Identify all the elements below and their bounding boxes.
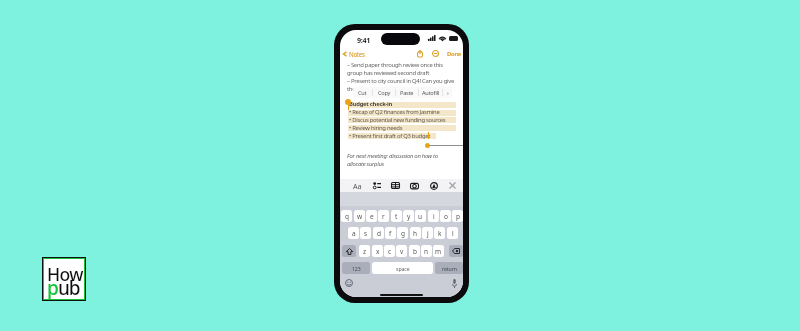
button[interactable]: Delete [449, 245, 463, 257]
button[interactable]: o [440, 210, 451, 222]
staticText: How [47, 262, 83, 286]
staticText: w [357, 212, 363, 221]
button[interactable]: p [452, 210, 463, 222]
button[interactable]: Notes [341, 48, 367, 60]
button[interactable]: Cut [353, 87, 372, 98]
button[interactable]: Format [351, 179, 364, 192]
staticText: space [396, 265, 410, 272]
staticText: v [400, 247, 404, 256]
button[interactable]: j [422, 227, 433, 239]
button[interactable]: Markup [427, 179, 440, 192]
staticText: n [424, 247, 429, 256]
button[interactable]: w [354, 210, 365, 222]
button[interactable]: l [447, 227, 458, 239]
button[interactable]: f [385, 227, 396, 239]
staticText: allocate surplus [347, 160, 384, 168]
button[interactable]: i [428, 210, 439, 222]
button[interactable]: t [391, 210, 402, 222]
button[interactable]: q [341, 210, 352, 222]
staticText: j [427, 229, 429, 238]
staticText: Done [447, 50, 462, 58]
button[interactable]: v [396, 245, 407, 257]
button[interactable]: x [372, 245, 383, 257]
staticText: ub [58, 275, 80, 301]
button[interactable]: d [373, 227, 384, 239]
button[interactable]: 123 [342, 262, 370, 274]
staticText: d [377, 229, 381, 238]
staticText: • Review hiring needs [349, 124, 403, 132]
staticText: x [376, 247, 380, 256]
staticText: b [413, 247, 417, 256]
staticText: k [438, 229, 442, 238]
staticText: Copy [378, 89, 391, 97]
button[interactable]: m [433, 245, 444, 257]
button[interactable]: n [421, 245, 432, 257]
staticText: Aa [353, 181, 362, 191]
staticText: l [452, 229, 454, 238]
staticText: Cut [358, 89, 367, 97]
button[interactable]: Done [445, 48, 463, 60]
staticText: 9:41 [357, 35, 371, 45]
button[interactable]: Dictate [449, 278, 459, 288]
staticText: the [347, 85, 356, 93]
staticText: p [47, 275, 58, 301]
staticText: m [435, 247, 442, 256]
staticText: a [352, 229, 356, 238]
button[interactable]: r [378, 210, 389, 222]
staticText: i [433, 212, 435, 221]
staticText: u [418, 212, 423, 221]
button[interactable]: return [435, 262, 463, 274]
staticText: Autofill [422, 89, 439, 97]
staticText: For next meeting: discussion on how to [347, 152, 438, 160]
button[interactable]: g [397, 227, 408, 239]
staticText: return [442, 265, 457, 272]
button[interactable]: h [410, 227, 421, 239]
button[interactable]: y [403, 210, 414, 222]
staticText: f [389, 229, 392, 238]
button[interactable]: Table [389, 179, 402, 192]
staticText: c [388, 247, 392, 256]
button[interactable]: Checklist [370, 179, 383, 192]
button[interactable]: Emoji [344, 278, 354, 288]
staticText: g [401, 229, 405, 238]
button[interactable]: Camera [408, 179, 421, 192]
staticText: t [395, 212, 398, 221]
staticText: s [364, 229, 368, 238]
staticText: p [456, 212, 460, 221]
staticText: z [363, 247, 367, 256]
button[interactable]: space [372, 262, 433, 274]
staticText: y [407, 212, 411, 221]
button[interactable]: Close [446, 179, 459, 192]
button[interactable]: Paste [396, 87, 418, 98]
button[interactable]: s [360, 227, 371, 239]
button[interactable]: › [443, 87, 452, 98]
button[interactable]: e [366, 210, 377, 222]
staticText: 123 [352, 265, 361, 272]
button[interactable]: z [359, 245, 370, 257]
staticText: r [382, 212, 385, 221]
button[interactable]: c [384, 245, 395, 257]
button[interactable]: k [434, 227, 445, 239]
button[interactable]: b [409, 245, 420, 257]
staticText: • Present first draft of Q3 budget [349, 132, 431, 140]
staticText: q [345, 212, 349, 221]
staticText: • Recap of Q2 finances from Jasmine [349, 108, 440, 116]
button[interactable]: Shift [342, 245, 356, 257]
staticText: group has reviewed second draft [347, 69, 429, 77]
staticText: o [444, 212, 448, 221]
staticText: Notes [349, 50, 365, 58]
button[interactable]: Copy [373, 87, 395, 98]
button[interactable]: a [348, 227, 359, 239]
button[interactable]: Autofill [419, 87, 442, 98]
staticText: › [447, 89, 449, 97]
button[interactable]: u [415, 210, 426, 222]
button[interactable]: Share [414, 48, 425, 59]
staticText: Paste [400, 89, 414, 97]
staticText: – Send paper through review once this [347, 61, 443, 69]
staticText: Budget check-in [349, 100, 393, 108]
button[interactable]: More options [430, 48, 441, 59]
staticText: e [370, 212, 374, 221]
staticText: h [413, 229, 418, 238]
staticText: – Present to city council in Q4! Can you… [347, 77, 454, 85]
staticText: • Discus potential new funding sources [349, 116, 446, 124]
